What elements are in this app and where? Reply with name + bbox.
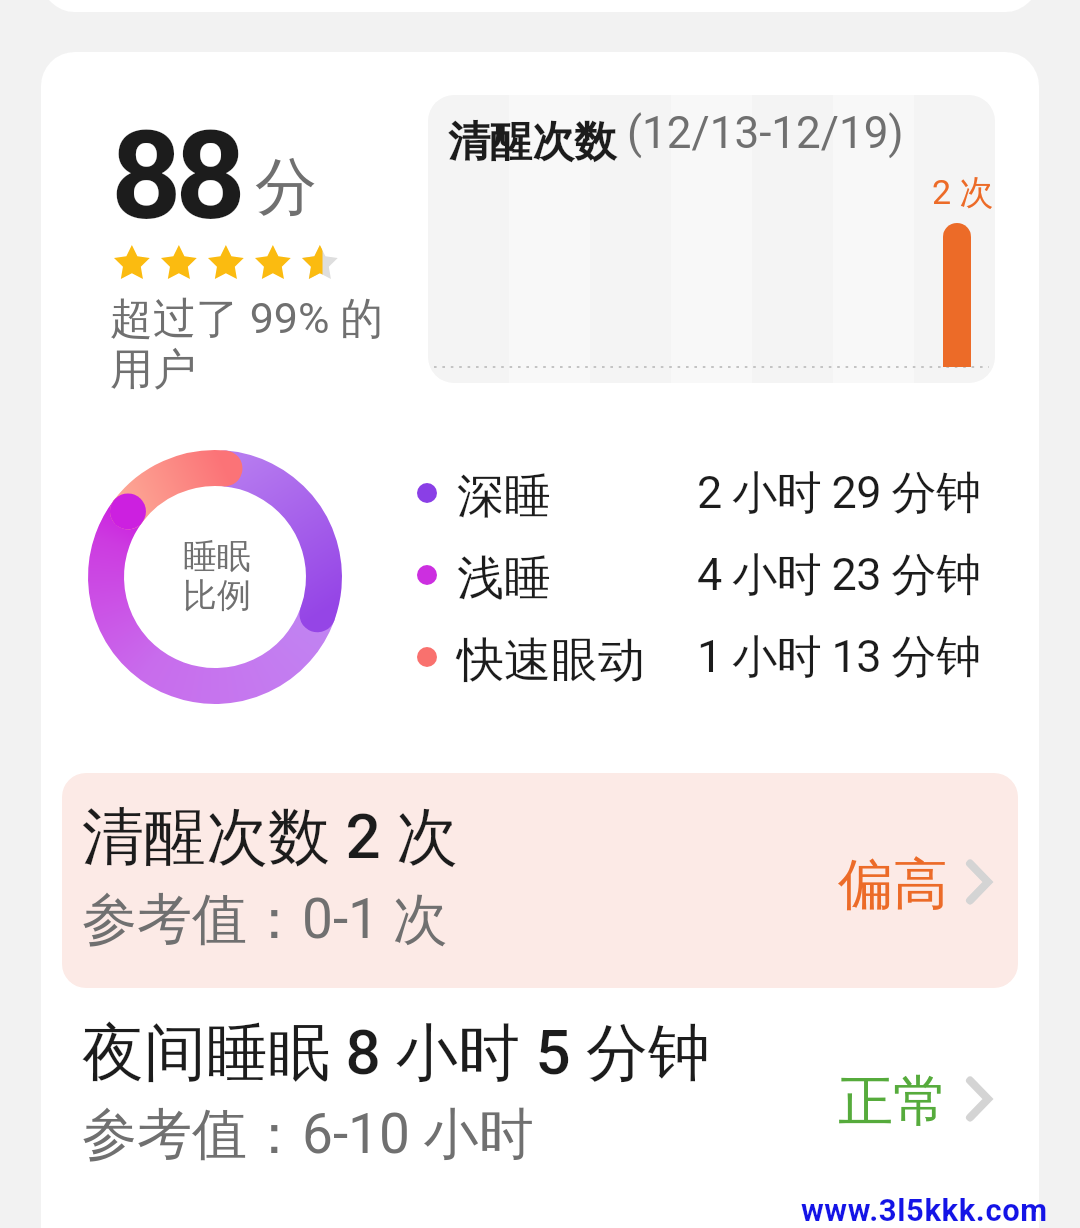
staticText: www.3l5kkk.com xyxy=(801,1192,1048,1228)
staticText: 参考值：6-10 小时 xyxy=(82,1100,534,1169)
staticText: 2 次 xyxy=(932,171,994,214)
staticText: 深睡 xyxy=(457,467,551,526)
staticText: 正常 xyxy=(838,1067,948,1136)
staticText: 浅睡 xyxy=(457,549,551,608)
staticText: 清醒次数 xyxy=(448,116,616,169)
staticText: 用户 xyxy=(110,343,196,397)
staticText: 睡眠 xyxy=(183,535,251,578)
button[interactable]: 清醒次数 2 次 xyxy=(62,773,1018,988)
staticText: 超过了 99% 的 xyxy=(110,292,384,346)
staticText: 快速眼动 xyxy=(457,631,645,690)
staticText: 参考值：0-1 次 xyxy=(82,885,448,954)
staticText: (12/13-12/19) xyxy=(627,107,904,159)
other: Details xyxy=(965,1077,993,1121)
staticText: 夜间睡眠 8 小时 5 分钟 xyxy=(82,1014,711,1092)
staticText: 88 xyxy=(111,104,240,248)
staticText: 4 小时 23 分钟 xyxy=(697,547,981,604)
button[interactable]: 清醒次数 xyxy=(428,95,995,383)
button[interactable]: 夜间睡眠 8 小时 5 分钟 xyxy=(62,1008,1018,1218)
staticText: 偏高 xyxy=(838,850,948,919)
staticText: 1 小时 13 分钟 xyxy=(697,629,981,686)
staticText: 清醒次数 2 次 xyxy=(82,798,459,876)
staticText: 比例 xyxy=(183,574,251,617)
staticText: 2 小时 29 分钟 xyxy=(697,465,981,522)
staticText: 分 xyxy=(255,148,317,226)
other: Details xyxy=(965,860,993,904)
